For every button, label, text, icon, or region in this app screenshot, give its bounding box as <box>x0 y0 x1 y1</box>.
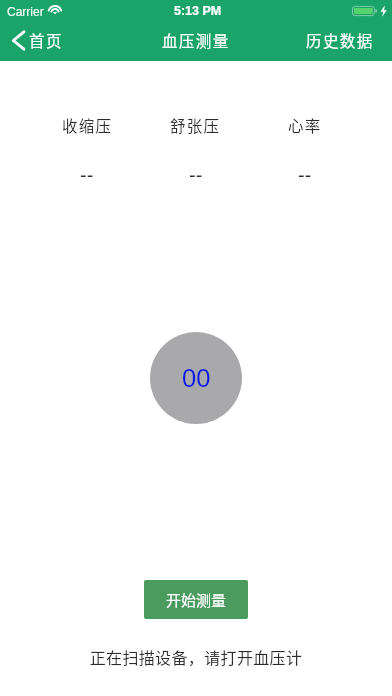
button[interactable]: 当前读数 <box>150 332 242 424</box>
staticText: -- <box>298 164 312 186</box>
staticText: 血压测量 <box>162 29 230 51</box>
staticText: Carrier <box>7 5 44 18</box>
staticText: 正在扫描设备，请打开血压计 <box>0 645 392 668</box>
staticText: -- <box>80 164 94 186</box>
staticText: -- <box>189 164 203 186</box>
button[interactable]: 历史数据 <box>302 26 378 54</box>
staticText: 00 <box>182 364 211 392</box>
button[interactable]: 开始测量 <box>144 580 248 619</box>
staticText: 舒张压 <box>170 114 221 136</box>
other: 返回 <box>12 31 25 50</box>
staticText: 开始测量 <box>166 589 227 611</box>
staticText: 5:13 PM <box>174 4 222 18</box>
other: 充电中 <box>380 5 387 17</box>
staticText: 收缩压 <box>62 114 113 136</box>
other: Wi-Fi <box>48 0 62 22</box>
staticText: 心率 <box>288 114 322 136</box>
staticText: 首页 <box>29 29 63 51</box>
button[interactable]: 返回 <box>8 27 65 53</box>
other: 电池 <box>352 5 378 17</box>
